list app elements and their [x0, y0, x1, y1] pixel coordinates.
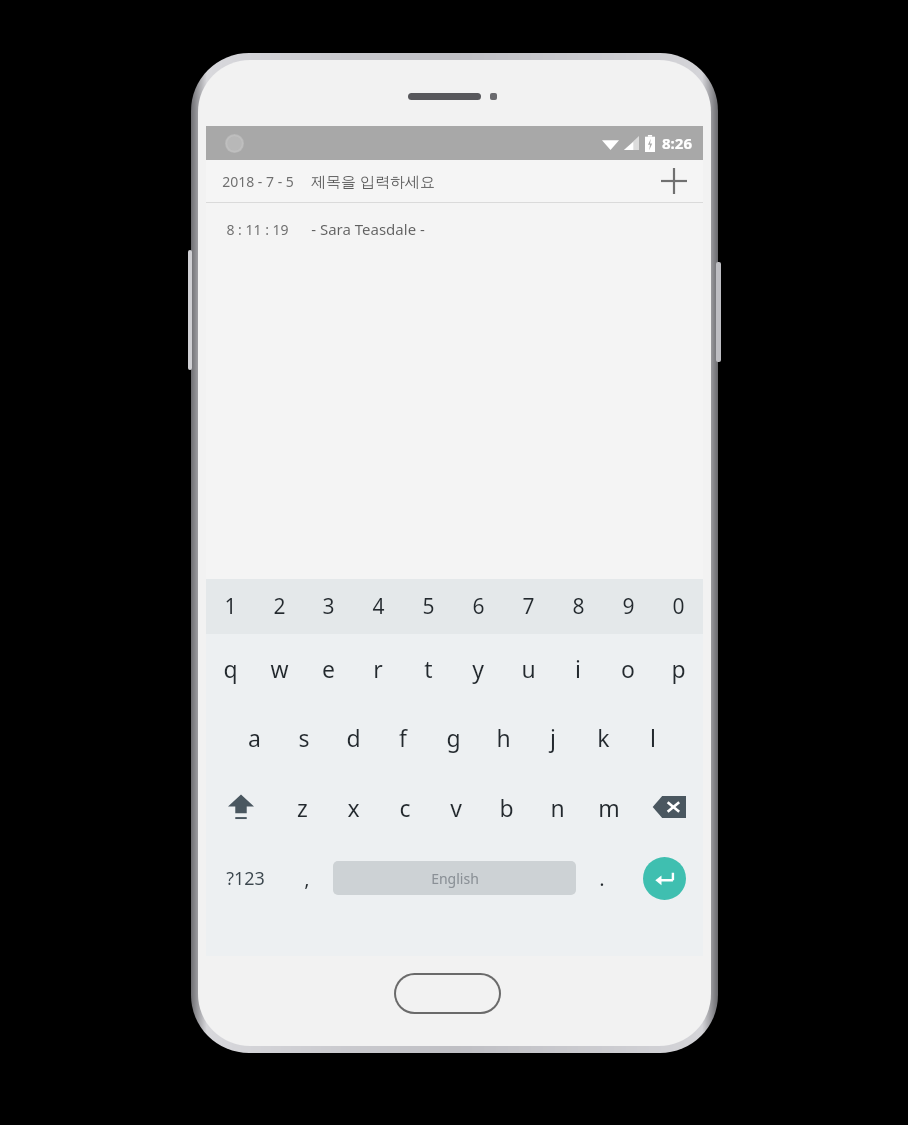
staticText: c	[399, 792, 411, 823]
button[interactable]: l	[628, 702, 678, 772]
staticText: l	[650, 722, 656, 753]
staticText: q	[223, 653, 238, 684]
staticText: i	[575, 653, 581, 684]
staticText: v	[450, 792, 462, 823]
staticText: y	[472, 653, 484, 684]
staticText: z	[297, 792, 308, 823]
staticText: x	[347, 792, 360, 823]
staticText: r	[373, 653, 383, 684]
button[interactable]: ,	[284, 842, 330, 914]
button[interactable]: 5	[403, 579, 453, 634]
button[interactable]: English	[333, 861, 576, 895]
staticText: t	[424, 653, 433, 684]
button[interactable]: a	[230, 702, 279, 772]
staticText: 8:26	[662, 133, 692, 153]
staticText: k	[597, 722, 610, 753]
staticText: j	[550, 722, 556, 753]
button[interactable]: 1	[206, 579, 255, 634]
staticText: ,	[304, 865, 310, 892]
button[interactable]: m	[583, 772, 634, 842]
button[interactable]: 7	[503, 579, 553, 634]
staticText: f	[399, 722, 407, 753]
button[interactable]: h	[478, 702, 528, 772]
staticText: 제목을 입력하세요	[311, 171, 435, 191]
staticText: m	[598, 792, 620, 823]
button[interactable]: k	[578, 702, 628, 772]
button[interactable]: 8 : 11 : 19	[206, 203, 703, 255]
staticText: n	[550, 792, 565, 823]
staticText: 1	[224, 592, 237, 621]
button[interactable]: .	[579, 842, 625, 914]
staticText: 2018 - 7 - 5	[222, 172, 294, 191]
staticText: 8	[572, 592, 585, 621]
button[interactable]: 3	[304, 579, 353, 634]
button[interactable]: d	[328, 702, 378, 772]
button[interactable]: r	[353, 634, 403, 702]
button[interactable]: t	[403, 634, 453, 702]
button[interactable]: Backspace	[634, 772, 703, 842]
button[interactable]: s	[279, 702, 328, 772]
staticText: b	[499, 792, 514, 823]
staticText: 6	[472, 592, 485, 621]
staticText: u	[521, 653, 536, 684]
button[interactable]: e	[304, 634, 353, 702]
staticText: 5	[422, 592, 435, 621]
button[interactable]: ?123	[206, 842, 284, 914]
button[interactable]: o	[603, 634, 653, 702]
staticText: 7	[522, 592, 535, 621]
staticText: h	[496, 722, 511, 753]
button[interactable]: 4	[353, 579, 403, 634]
button[interactable]: f	[378, 702, 428, 772]
button[interactable]: w	[255, 634, 304, 702]
staticText: 0	[672, 592, 685, 621]
button[interactable]: 9	[603, 579, 653, 634]
staticText: 2	[273, 592, 286, 621]
staticText: - Sara Teasdale -	[311, 219, 425, 239]
button[interactable]: Shift	[206, 772, 276, 842]
staticText: 8 : 11 : 19	[226, 220, 289, 239]
staticText: 3	[322, 592, 335, 621]
staticText: 4	[372, 592, 385, 621]
button[interactable]: n	[532, 772, 583, 842]
staticText: o	[621, 653, 635, 684]
button[interactable]: 2	[255, 579, 304, 634]
button[interactable]: x	[328, 772, 379, 842]
button[interactable]: y	[453, 634, 503, 702]
staticText: ?123	[226, 866, 265, 891]
button[interactable]: 6	[453, 579, 503, 634]
button[interactable]: Enter	[625, 842, 703, 914]
staticText: 9	[622, 592, 635, 621]
button[interactable]: Home	[394, 973, 501, 1014]
button[interactable]: 0	[653, 579, 703, 634]
staticText: English	[431, 869, 479, 888]
button[interactable]: 8	[553, 579, 603, 634]
button[interactable]: z	[276, 772, 328, 842]
button[interactable]: Add	[655, 162, 693, 200]
button[interactable]: c	[379, 772, 430, 842]
staticText: p	[671, 653, 686, 684]
button[interactable]: i	[553, 634, 603, 702]
button[interactable]: j	[528, 702, 578, 772]
button[interactable]: b	[481, 772, 532, 842]
button[interactable]: u	[503, 634, 553, 702]
staticText: e	[322, 653, 335, 684]
staticText: s	[298, 722, 310, 753]
button[interactable]: q	[206, 634, 255, 702]
staticText: a	[248, 722, 261, 753]
staticText: d	[346, 722, 361, 753]
button[interactable]: g	[428, 702, 478, 772]
button[interactable]: p	[653, 634, 703, 702]
staticText: w	[270, 653, 289, 684]
staticText: g	[446, 722, 461, 753]
button[interactable]: v	[430, 772, 481, 842]
staticText: .	[599, 865, 605, 892]
